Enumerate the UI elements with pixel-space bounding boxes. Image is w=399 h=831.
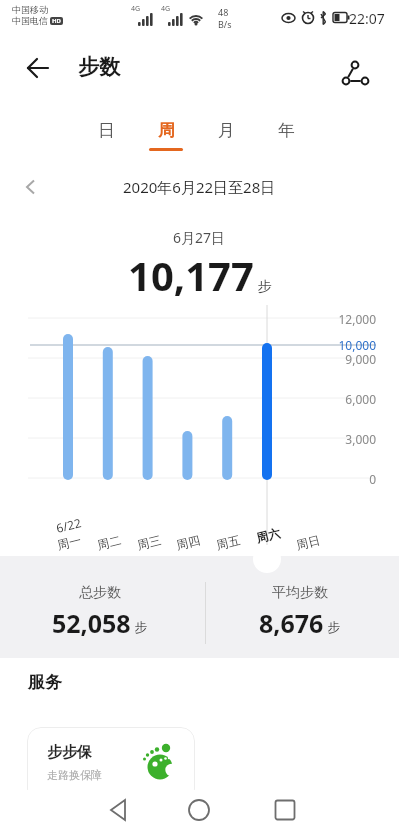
staticText: 周一 <box>56 532 83 553</box>
button[interactable] <box>179 790 219 830</box>
staticText: 22:07 <box>349 9 385 28</box>
staticText: 周二 <box>96 532 123 553</box>
staticText: 周六 <box>255 525 282 546</box>
staticText: 6/22 <box>54 514 84 536</box>
staticText: 步 <box>131 618 148 636</box>
staticText: 10,177 <box>128 248 254 302</box>
staticText: 年 <box>278 120 295 141</box>
staticText: 3,000 <box>345 431 376 447</box>
button[interactable] <box>98 790 138 830</box>
staticText: 周三 <box>136 532 163 553</box>
button[interactable] <box>265 790 305 830</box>
staticText: 步 <box>324 618 341 636</box>
staticText: 中国移动 <box>12 4 48 15</box>
staticText: 周五 <box>215 532 242 553</box>
staticText: 8,676 <box>259 606 324 640</box>
staticText: 2020年6月22日至28日 <box>123 177 276 197</box>
staticText: 总步数 <box>79 584 121 602</box>
staticText: B/s <box>218 18 232 30</box>
staticText: 48 <box>218 6 229 18</box>
staticText: 4G <box>131 4 141 14</box>
staticText: 4G <box>161 4 171 14</box>
button[interactable]: 月 <box>196 112 256 160</box>
staticText: HD <box>52 17 61 25</box>
staticText: 周四 <box>175 532 202 553</box>
staticText: 日 <box>98 120 115 141</box>
staticText: 步 <box>254 276 272 295</box>
staticText: 周日 <box>295 532 322 553</box>
staticText: 6月27日 <box>173 228 226 247</box>
staticText: 步步保 <box>47 743 92 762</box>
staticText: 6,000 <box>345 391 376 407</box>
staticText: 9,000 <box>345 351 376 367</box>
staticText: 10,000 <box>338 337 376 353</box>
button[interactable] <box>24 54 54 84</box>
button[interactable] <box>335 52 375 92</box>
staticText: 走路换保障 <box>47 768 102 782</box>
staticText: 月 <box>218 120 235 141</box>
staticText: 52,058 <box>52 606 131 640</box>
button[interactable]: 日 <box>76 112 136 160</box>
staticText: 周 <box>158 120 175 141</box>
button[interactable]: 年 <box>256 112 316 160</box>
staticText: 服务 <box>28 672 62 693</box>
staticText: 0 <box>369 471 376 487</box>
button[interactable]: 周 <box>136 112 196 160</box>
staticText: 12,000 <box>338 311 376 327</box>
staticText: 步数 <box>78 54 120 80</box>
button[interactable]: 2020年6月22日至28日 <box>0 172 399 202</box>
button[interactable]: 步步保 <box>27 727 195 803</box>
staticText: 平均步数 <box>272 584 328 602</box>
staticText: 中国电信 <box>12 15 48 26</box>
